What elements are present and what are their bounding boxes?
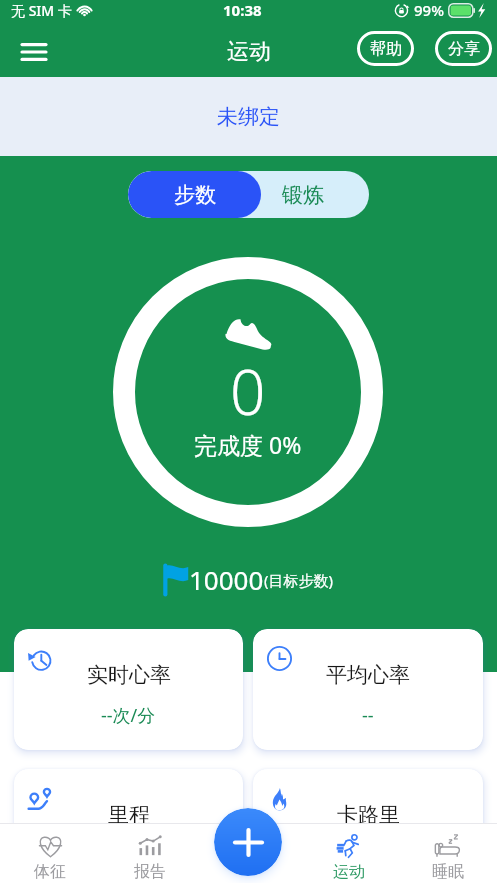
button[interactable]: 步数 [128,171,261,218]
button[interactable]: 实时心率 [14,629,243,750]
staticText: 实时心率 [87,662,171,688]
staticText: -- [362,703,374,728]
staticText: 体征 [34,862,66,882]
staticText: 10:38 [223,0,262,20]
staticText: -- [123,843,135,868]
staticText: 睡眠 [432,862,464,882]
button[interactable]: 锻炼 [261,171,369,218]
button[interactable]: 里程 [14,769,243,883]
staticText: 帮助 [370,39,402,59]
staticText: (目标步数) [264,570,334,590]
button[interactable]: 帮助 [357,31,414,66]
staticText: 分享 [448,39,480,59]
staticText: 99% [414,0,444,20]
staticText: 运动 [333,862,365,882]
staticText: 平均心率 [326,662,410,688]
staticText: 卡路里 [337,802,400,828]
staticText: 报告 [134,862,166,882]
button[interactable]: Add [214,808,282,876]
staticText: 锻炼 [282,182,324,208]
button[interactable]: 运动 [299,824,398,883]
staticText: 0 [230,349,266,433]
button[interactable]: 平均心率 [253,629,483,750]
button[interactable]: 分享 [435,31,492,66]
button[interactable]: Menu [12,30,56,74]
button[interactable]: 卡路里 [253,769,483,883]
staticText: 完成度 0% [194,429,302,460]
staticText: 10000 [189,562,264,597]
button[interactable]: 睡眠 [398,824,497,883]
staticText: 无 SIM 卡 [11,1,72,20]
staticText: --次/分 [101,703,156,728]
staticText: 里程 [108,802,150,828]
button[interactable]: 报告 [100,824,200,883]
staticText: 运动 [227,38,271,66]
button[interactable]: 未绑定 [0,77,497,156]
button[interactable]: 体征 [0,824,100,883]
staticText: 步数 [174,182,216,208]
staticText: 未绑定 [217,104,280,130]
